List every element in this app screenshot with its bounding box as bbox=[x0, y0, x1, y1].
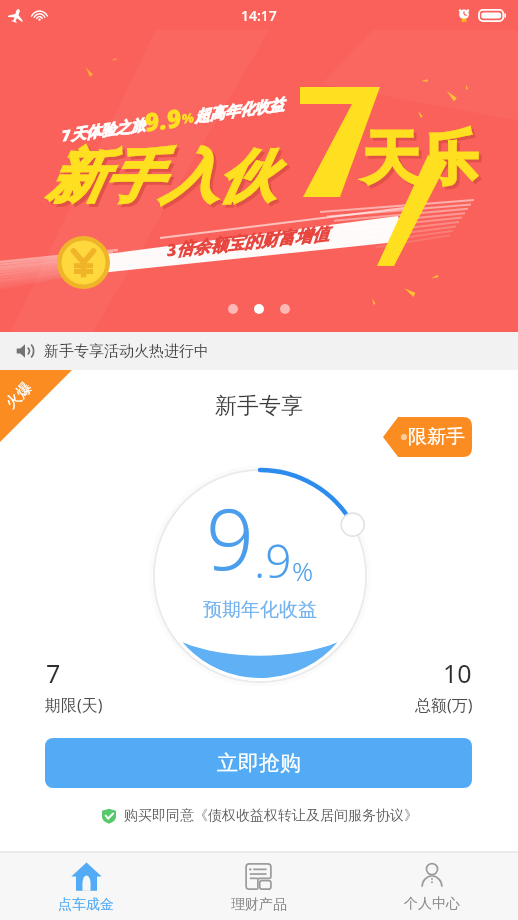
staticText: 新手专享活动火热进行中 bbox=[44, 342, 209, 361]
button[interactable]: 理财产品 bbox=[172, 852, 345, 920]
staticText: 7天体验之旅 bbox=[60, 114, 146, 145]
staticText: % bbox=[292, 553, 314, 588]
button[interactable]: 个人中心 bbox=[345, 852, 518, 920]
staticText: 3倍余额宝的财富增值 bbox=[165, 221, 330, 261]
button[interactable]: 限新手 bbox=[383, 416, 472, 458]
staticText: % bbox=[180, 108, 196, 128]
staticText: 天乐 bbox=[365, 125, 481, 198]
staticText: 新手入伙 bbox=[47, 141, 275, 213]
button[interactable]: 点车成金 bbox=[0, 852, 172, 920]
staticText: 个人中心 bbox=[404, 895, 460, 913]
staticText: 理财产品 bbox=[231, 896, 287, 914]
staticText: 总额(万) bbox=[415, 694, 473, 716]
staticText: 火爆 bbox=[2, 378, 36, 413]
staticText: 超高年化收益 bbox=[193, 95, 285, 127]
staticText: .9 bbox=[254, 529, 292, 592]
staticText: 9 bbox=[206, 480, 254, 594]
staticText: 立即抢购 bbox=[217, 750, 301, 776]
staticText: 点车成金 bbox=[58, 896, 114, 914]
staticText: 9.9 bbox=[142, 100, 184, 139]
staticText: 限新手 bbox=[408, 425, 465, 449]
staticText: 14:17 bbox=[241, 6, 277, 25]
staticText: 10 bbox=[443, 656, 472, 690]
button[interactable]: 购买即同意《债权收益权转让及居间服务协议》 bbox=[101, 807, 418, 825]
button[interactable]: Announcement bbox=[0, 332, 518, 370]
staticText: 购买即同意《债权收益权转让及居间服务协议》 bbox=[124, 807, 418, 825]
staticText: 新手入伙 bbox=[50, 144, 278, 216]
staticText: 7 bbox=[46, 656, 61, 690]
button[interactable]: 立即抢购 bbox=[45, 738, 472, 788]
staticText: 新手专享 bbox=[215, 392, 303, 420]
staticText: 期限(天) bbox=[45, 694, 103, 716]
other: Announcement bbox=[16, 342, 34, 360]
staticText: 预期年化收益 bbox=[203, 598, 317, 622]
staticText: 天乐 bbox=[362, 122, 478, 195]
